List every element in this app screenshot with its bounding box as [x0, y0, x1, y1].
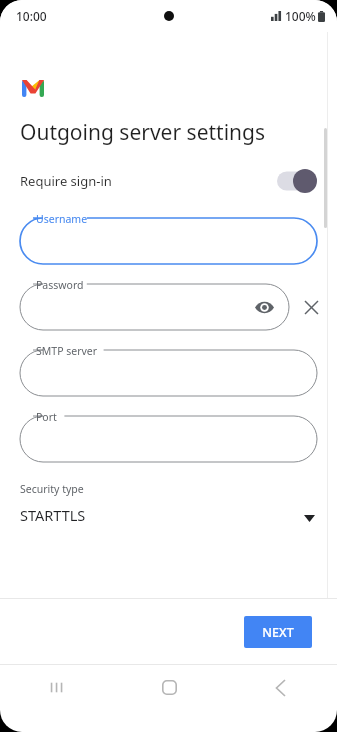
button[interactable]: Recent apps — [0, 665, 113, 710]
staticText: NEXT — [262, 624, 294, 641]
staticText: Require sign-in — [20, 172, 112, 190]
button[interactable]: Back — [225, 665, 337, 710]
button[interactable]: Username — [0, 210, 337, 264]
button[interactable]: NEXT — [244, 616, 312, 648]
button[interactable]: Show password — [253, 296, 275, 318]
button[interactable]: Require sign-in — [0, 164, 337, 198]
staticText: STARTTLS — [20, 505, 86, 525]
button[interactable]: Security type — [0, 482, 337, 540]
staticText: Port — [36, 410, 57, 424]
staticText: Username — [36, 212, 88, 226]
staticText: 100% — [285, 8, 316, 24]
staticText: Password — [36, 278, 84, 292]
button[interactable]: Clear password — [298, 294, 324, 320]
button[interactable]: Port — [0, 408, 337, 462]
button[interactable]: SMTP server — [0, 342, 337, 396]
button[interactable]: Home — [113, 665, 225, 710]
staticText: SMTP server — [36, 344, 98, 358]
button[interactable]: Require sign-in toggle — [277, 169, 317, 193]
staticText: Security type — [20, 482, 84, 496]
button[interactable]: Password — [0, 276, 337, 330]
staticText: Outgoing server settings — [20, 118, 266, 147]
staticText: 10:00 — [16, 8, 47, 24]
other: Open security type menu — [304, 515, 315, 522]
